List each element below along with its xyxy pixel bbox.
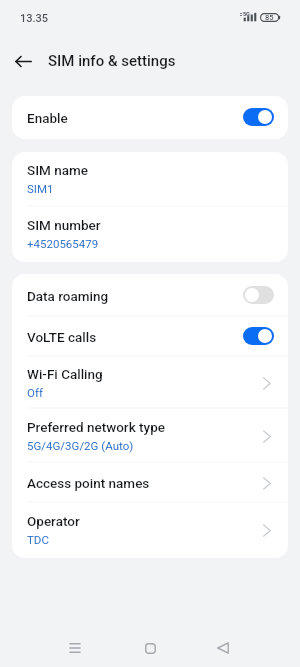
- staticText: 5G/4G/3G/2G (Auto): [27, 439, 134, 452]
- button[interactable]: Preferred network type: [12, 409, 288, 463]
- button[interactable]: Data roaming: [12, 274, 288, 317]
- staticText: SIM info & settings: [48, 52, 176, 70]
- staticText: SIM name: [27, 162, 88, 178]
- staticText: Operator: [27, 513, 80, 529]
- staticText: SIM number: [27, 217, 101, 233]
- button[interactable]: Access point names: [12, 463, 288, 503]
- staticText: +4520565479: [27, 237, 99, 250]
- button[interactable]: VoLTE calls: [12, 317, 288, 357]
- staticText: Data roaming: [27, 288, 109, 304]
- staticText: SIM1: [27, 182, 54, 195]
- staticText: VoLTE calls: [27, 329, 97, 345]
- staticText: Preferred network type: [27, 419, 165, 435]
- staticText: 85: [265, 13, 274, 22]
- button[interactable]: Enable: [12, 96, 288, 139]
- button[interactable]: Back: [200, 625, 246, 667]
- staticText: Access point names: [27, 475, 150, 491]
- button[interactable]: Wi-Fi Calling: [12, 357, 288, 409]
- button[interactable]: SIM name: [12, 152, 288, 207]
- button[interactable]: Recent apps: [52, 625, 98, 667]
- staticText: 13.35: [20, 12, 49, 25]
- button[interactable]: Operator: [12, 503, 288, 558]
- button[interactable]: Home: [127, 625, 173, 667]
- staticText: TDC: [27, 533, 49, 546]
- staticText: Enable: [27, 110, 68, 126]
- staticText: 5G: [243, 11, 250, 18]
- button[interactable]: Back: [11, 49, 36, 74]
- button[interactable]: SIM number: [12, 207, 288, 262]
- staticText: Wi-Fi Calling: [27, 366, 103, 382]
- staticText: Off: [27, 386, 43, 399]
